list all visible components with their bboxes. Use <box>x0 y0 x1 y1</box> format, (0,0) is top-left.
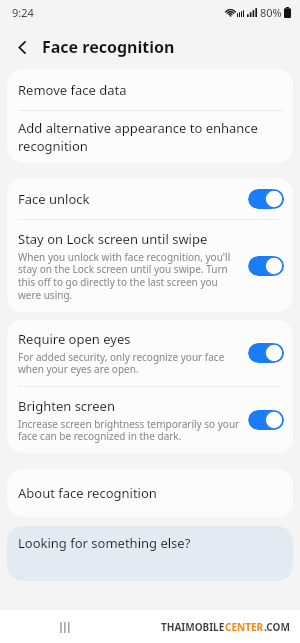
button[interactable]: Stay on Lock screen until swipe <box>7 220 293 312</box>
staticText: Face unlock <box>18 190 90 208</box>
staticText: Looking for something else? <box>18 534 191 552</box>
staticText: Face recognition <box>42 36 175 58</box>
staticText: 9:24 <box>12 5 34 20</box>
staticText: THAIMOBILE <box>161 620 225 634</box>
staticText: Brighten screen <box>18 397 115 415</box>
staticText: CENTER <box>225 620 264 634</box>
staticText: .COM <box>264 620 290 634</box>
button[interactable]: Toggle setting <box>248 343 284 363</box>
staticText: Require open eyes <box>18 330 131 348</box>
staticText: When you unlock with face recognition, y… <box>18 250 240 302</box>
staticText: Add alternative appearance to enhance re… <box>18 119 258 155</box>
button[interactable]: Toggle setting <box>248 410 284 430</box>
staticText: Increase screen brightness temporarily s… <box>18 417 240 443</box>
button[interactable]: Require open eyes <box>7 320 293 386</box>
button[interactable]: Toggle setting <box>248 189 284 209</box>
staticText: Remove face data <box>18 81 127 99</box>
staticText: About face recognition <box>18 484 157 502</box>
staticText: For added security, only recognize your … <box>18 350 240 376</box>
button[interactable]: About face recognition <box>7 469 293 517</box>
staticText: Stay on Lock screen until swipe <box>18 230 208 248</box>
button[interactable]: Remove face data <box>7 69 293 110</box>
button[interactable]: Brighten screen <box>7 387 293 453</box>
button[interactable]: Face unlock <box>7 178 293 219</box>
button[interactable]: Add alternative appearance to enhance re… <box>7 111 293 163</box>
button[interactable]: Looking for something else? <box>7 526 293 581</box>
button[interactable]: Recents <box>51 613 79 641</box>
staticText: 80% <box>260 5 282 20</box>
button[interactable]: Back <box>7 32 37 62</box>
button[interactable]: Toggle setting <box>248 256 284 276</box>
